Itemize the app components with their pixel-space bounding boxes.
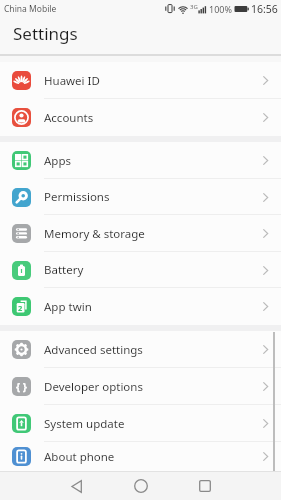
button[interactable]: Accounts: [0, 99, 281, 136]
staticText: Huawei ID: [44, 73, 100, 89]
button[interactable]: { }: [0, 368, 281, 405]
button[interactable]: Huawei ID: [0, 62, 281, 99]
button[interactable]: [192, 473, 218, 499]
staticText: System update: [44, 416, 125, 432]
button[interactable]: Apps: [0, 142, 281, 179]
staticText: { }: [16, 380, 28, 394]
staticText: Apps: [44, 153, 72, 169]
button[interactable]: 2: [0, 288, 281, 325]
button[interactable]: Battery: [0, 252, 281, 288]
button[interactable]: Memory & storage: [0, 215, 281, 252]
staticText: 100%: [209, 3, 232, 15]
staticText: App twin: [44, 299, 92, 315]
staticText: Permissions: [44, 189, 110, 205]
button[interactable]: System update: [0, 405, 281, 442]
button[interactable]: About phone: [0, 442, 281, 471]
staticText: China Mobile: [4, 3, 57, 15]
staticText: Battery: [44, 262, 84, 278]
staticText: 3G: [190, 3, 198, 11]
staticText: Developer options: [44, 379, 143, 395]
staticText: About phone: [44, 449, 115, 465]
button[interactable]: [128, 473, 154, 499]
staticText: Accounts: [44, 110, 94, 126]
staticText: Advanced settings: [44, 342, 143, 358]
button[interactable]: [64, 473, 90, 499]
button[interactable]: Permissions: [0, 179, 281, 215]
button[interactable]: Advanced settings: [0, 331, 281, 368]
staticText: Settings: [13, 22, 78, 45]
staticText: 16:56: [251, 2, 278, 16]
staticText: Memory & storage: [44, 226, 145, 242]
staticText: 2: [18, 303, 23, 313]
